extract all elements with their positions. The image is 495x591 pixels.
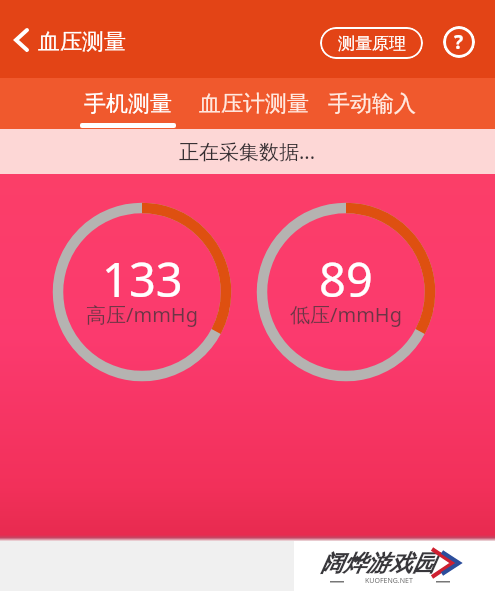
button[interactable] — [6, 24, 38, 56]
staticText: 血压测量 — [38, 28, 126, 56]
staticText: 手机测量 — [84, 90, 172, 118]
staticText: 低压/mmHg — [290, 301, 402, 328]
staticText: 高压/mmHg — [86, 301, 198, 328]
staticText: 133 — [102, 247, 183, 307]
button[interactable]: 手机测量 — [76, 78, 180, 129]
staticText: 阔烨游戏园 — [320, 549, 435, 578]
button[interactable]: 手动输入 — [328, 78, 416, 129]
button[interactable]: ? — [443, 26, 475, 58]
button[interactable]: 测量原理 — [320, 27, 423, 59]
button[interactable]: 血压计测量 — [196, 78, 312, 129]
staticText: 手动输入 — [328, 90, 416, 118]
staticText: ? — [454, 29, 464, 55]
staticText: 正在采集数据... — [179, 138, 316, 165]
staticText: 测量原理 — [338, 33, 406, 54]
staticText: 89 — [319, 247, 373, 307]
staticText: 血压计测量 — [199, 90, 309, 118]
staticText: KUOFENG.NET — [365, 576, 413, 586]
